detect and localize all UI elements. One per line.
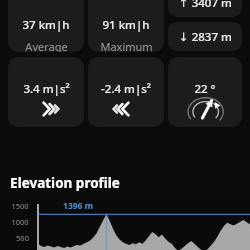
- staticText: Average: [25, 39, 68, 52]
- staticText: ↓ 2837 m: [179, 29, 232, 45]
- button[interactable]: 1500: [0, 200, 250, 250]
- staticText: 3.4 m|s²: [23, 81, 70, 97]
- button[interactable]: ↓ 2837 m: [168, 22, 242, 51]
- staticText: 22 °: [194, 81, 216, 97]
- staticText: 1396 m: [63, 200, 93, 212]
- button[interactable]: ↑ 3407 m: [168, 0, 242, 17]
- button[interactable]: 91 km|h: [88, 0, 164, 52]
- button[interactable]: 37 km|h: [8, 0, 84, 52]
- button[interactable]: Wind direction 22 degrees: [168, 57, 242, 127]
- staticText: Maximum: [100, 39, 153, 52]
- staticText: 1000: [11, 217, 29, 227]
- button[interactable]: Max deceleration: [88, 57, 164, 127]
- staticText: Elevation profile: [10, 174, 120, 192]
- staticText: 500: [16, 233, 29, 243]
- staticText: -2.4 m|s²: [101, 81, 151, 97]
- staticText: 37 km|h: [22, 17, 70, 33]
- staticText: ↑ 3407 m: [179, 0, 232, 11]
- staticText: 1500: [11, 201, 29, 211]
- staticText: 91 km|h: [102, 17, 150, 33]
- button[interactable]: Max acceleration: [8, 57, 84, 127]
